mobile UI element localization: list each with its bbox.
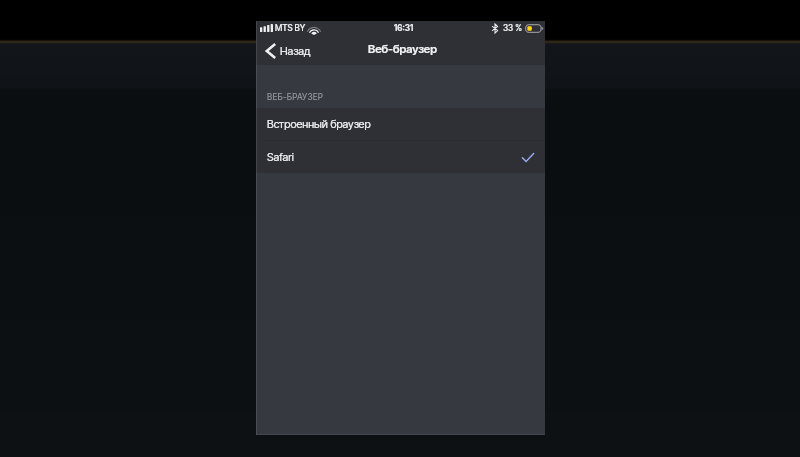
staticText: 33 % — [503, 23, 522, 33]
staticText: ВЕБ-БРАУЗЕР — [267, 92, 324, 102]
button[interactable]: Встроенный браузер — [256, 108, 545, 140]
staticText: Назад — [280, 44, 311, 57]
staticText: Встроенный браузер — [267, 117, 371, 130]
staticText: Safari — [267, 150, 294, 163]
button[interactable]: Назад — [256, 38, 321, 63]
button[interactable]: Safari — [256, 141, 545, 173]
staticText: Веб-браузер — [368, 42, 437, 56]
staticText: 16:31 — [394, 23, 414, 33]
staticText: MTS BY — [275, 23, 306, 33]
